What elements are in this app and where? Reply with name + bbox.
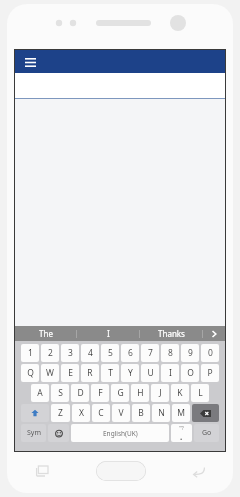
staticText: I (169, 367, 172, 379)
button[interactable]: 4 (81, 344, 99, 362)
staticText: J (159, 387, 162, 399)
button[interactable]: A (31, 384, 49, 402)
button[interactable]: I (77, 326, 139, 341)
staticText: 1 (28, 347, 33, 359)
button[interactable]: 6 (121, 344, 139, 362)
staticText: S (58, 387, 63, 399)
staticText: 4 (88, 347, 93, 359)
button[interactable]: C (92, 404, 110, 422)
staticText: X (79, 407, 84, 419)
staticText: W (46, 367, 54, 379)
button[interactable]: U (141, 364, 159, 382)
button[interactable]: N (152, 404, 170, 422)
staticText: P (207, 367, 213, 379)
button[interactable]: Y (121, 364, 139, 382)
button[interactable]: V (112, 404, 130, 422)
button[interactable]: J (151, 384, 169, 402)
staticText: "'? (179, 425, 184, 431)
staticText: H (137, 387, 144, 399)
staticText: G (117, 387, 124, 399)
staticText: I (107, 328, 110, 339)
staticText: 6 (128, 347, 133, 359)
staticText: E (68, 367, 73, 379)
staticText: C (98, 407, 104, 419)
button[interactable]: 5 (101, 344, 119, 362)
button[interactable]: I (161, 364, 179, 382)
button[interactable]: K (171, 384, 189, 402)
button[interactable]: X (72, 404, 90, 422)
staticText: R (87, 367, 93, 379)
staticText: U (147, 367, 154, 379)
button[interactable]: Z (51, 404, 70, 422)
staticText: V (118, 407, 124, 419)
button[interactable]: R (81, 364, 99, 382)
button[interactable]: 2 (41, 344, 59, 362)
button[interactable]: H (131, 384, 149, 402)
button[interactable]: W (41, 364, 59, 382)
staticText: 9 (188, 347, 193, 359)
staticText: 7 (148, 347, 153, 359)
staticText: 2 (48, 347, 53, 359)
button[interactable]: E (61, 364, 79, 382)
staticText: K (177, 387, 183, 399)
staticText: 3 (68, 347, 73, 359)
staticText: O (187, 367, 194, 379)
staticText: Sym (27, 428, 41, 438)
staticText: Z (58, 407, 63, 419)
button[interactable]: Sym (21, 424, 46, 442)
button[interactable]: S (51, 384, 69, 402)
button[interactable]: O (181, 364, 199, 382)
staticText: Q (27, 367, 34, 379)
staticText: L (198, 387, 203, 399)
button[interactable]: 0 (201, 344, 219, 362)
button[interactable]: More suggestions (203, 326, 225, 341)
staticText: A (37, 387, 43, 399)
button[interactable]: P (201, 364, 219, 382)
staticText: F (98, 387, 103, 399)
button[interactable]: M (172, 404, 190, 422)
button[interactable]: 3 (61, 344, 79, 362)
staticText: English(UK) (103, 429, 138, 438)
staticText: . (180, 431, 183, 442)
button[interactable]: G (111, 384, 129, 402)
staticText: Thanks (158, 328, 185, 339)
staticText: N (158, 407, 165, 419)
button[interactable]: T (101, 364, 119, 382)
button[interactable]: Home (76, 449, 165, 493)
button[interactable]: 9 (181, 344, 199, 362)
button[interactable]: B (132, 404, 150, 422)
button[interactable]: Thanks (140, 326, 202, 341)
button[interactable]: Go (194, 424, 219, 442)
button[interactable]: 1 (21, 344, 39, 362)
staticText: T (108, 367, 113, 379)
button[interactable]: 8 (161, 344, 179, 362)
staticText: 8 (168, 347, 173, 359)
staticText: B (138, 407, 144, 419)
button[interactable]: D (71, 384, 89, 402)
button[interactable]: Emoji (48, 424, 69, 442)
button[interactable]: Shift (21, 404, 49, 422)
button[interactable]: 7 (141, 344, 159, 362)
staticText: 0 (208, 347, 213, 359)
staticText: D (77, 387, 84, 399)
button[interactable]: Back (165, 449, 233, 493)
button[interactable]: Backspace (192, 404, 219, 422)
button[interactable]: Menu (22, 54, 38, 70)
staticText: Go (202, 428, 212, 438)
button[interactable]: Recents (7, 449, 76, 493)
staticText: The (39, 328, 53, 339)
staticText: Y (128, 367, 133, 379)
button[interactable]: English(UK) (71, 424, 169, 442)
staticText: 5 (108, 347, 113, 359)
staticText: M (177, 407, 185, 419)
button[interactable]: Period (171, 424, 192, 442)
button[interactable]: The (15, 326, 76, 341)
button[interactable]: L (191, 384, 209, 402)
button[interactable]: F (91, 384, 109, 402)
button[interactable]: Q (21, 364, 39, 382)
